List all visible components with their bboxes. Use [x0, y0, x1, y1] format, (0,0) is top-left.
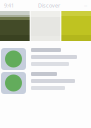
staticText: Discover [38, 2, 60, 9]
button[interactable] [0, 72, 91, 94]
button[interactable] [0, 48, 91, 70]
staticText: 9:41 [4, 2, 14, 9]
